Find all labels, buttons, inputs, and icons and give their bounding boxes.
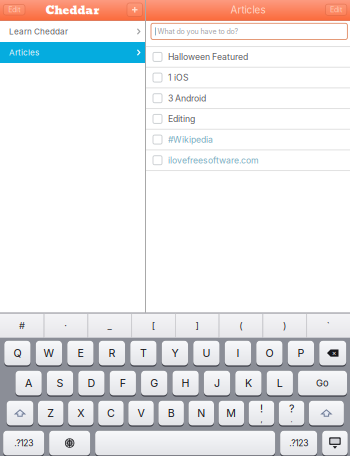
button[interactable]: 1 iOS: [146, 68, 350, 88]
staticText: _: [107, 320, 111, 331]
staticText: V: [137, 407, 144, 419]
staticText: Y: [171, 347, 178, 359]
button[interactable]: J: [204, 371, 230, 397]
button[interactable]: N: [188, 401, 214, 427]
button[interactable]: ]: [175, 314, 219, 338]
button[interactable]: #: [0, 314, 44, 338]
button[interactable]: W: [36, 341, 62, 367]
staticText: What do you have to do?: [157, 27, 238, 36]
staticText: (: [239, 320, 242, 331]
staticText: W: [43, 347, 54, 359]
staticText: 1 iOS: [168, 72, 189, 83]
button[interactable]: Go: [298, 371, 347, 397]
button[interactable]: A: [15, 371, 42, 397]
staticText: G: [150, 377, 158, 389]
button[interactable]: `: [306, 314, 350, 338]
button[interactable]: Articles: [0, 42, 145, 63]
staticText: N: [197, 407, 205, 419]
staticText: ·: [64, 320, 67, 331]
staticText: R: [108, 347, 115, 359]
staticText: I: [236, 347, 239, 359]
staticText: L: [277, 377, 283, 389]
staticText: !: [260, 402, 263, 415]
staticText: ?: [289, 402, 294, 415]
button[interactable]: H: [172, 371, 199, 397]
staticText: X: [77, 407, 84, 419]
button[interactable]: [7, 401, 33, 427]
button[interactable]: C: [98, 401, 124, 427]
button[interactable]: .?123: [280, 431, 317, 456]
staticText: ]: [195, 320, 198, 331]
button[interactable]: K: [235, 371, 261, 397]
staticText: F: [120, 377, 126, 389]
staticText: Halloween Featured: [168, 52, 248, 62]
button[interactable]: ×: [319, 341, 346, 367]
button[interactable]: S: [47, 371, 73, 397]
staticText: Articles: [230, 4, 265, 16]
button[interactable]: L: [267, 371, 293, 397]
staticText: B: [168, 407, 175, 419]
staticText: T: [140, 347, 147, 359]
button[interactable]: Add list: [127, 3, 142, 16]
staticText: U: [202, 347, 210, 359]
button[interactable]: F: [110, 371, 136, 397]
button[interactable]: X: [68, 401, 94, 427]
staticText: .?123: [14, 438, 33, 448]
staticText: S: [56, 377, 63, 389]
button[interactable]: B: [158, 401, 184, 427]
button[interactable]: [95, 431, 275, 456]
staticText: ,: [260, 415, 262, 424]
button[interactable]: Q: [4, 341, 30, 367]
staticText: C: [107, 407, 115, 419]
staticText: Articles: [9, 48, 39, 57]
staticText: .?123: [289, 438, 308, 448]
staticText: Learn Cheddar: [9, 27, 68, 36]
button[interactable]: Halloween Featured: [146, 47, 350, 68]
button[interactable]: M: [219, 401, 244, 427]
button[interactable]: O: [256, 341, 282, 367]
button[interactable]: (: [219, 314, 263, 338]
staticText: ilovefreesoftware.com: [168, 155, 259, 165]
staticText: H: [182, 377, 190, 389]
staticText: Edit: [8, 5, 20, 14]
button[interactable]: ?: [279, 401, 304, 427]
staticText: Q: [13, 347, 21, 359]
button[interactable]: _: [87, 314, 131, 338]
button[interactable]: [: [131, 314, 175, 338]
staticText: Z: [47, 407, 54, 419]
button[interactable]: P: [288, 341, 314, 367]
staticText: M: [226, 407, 236, 419]
staticText: Cheddar: [45, 1, 99, 19]
button[interactable]: [49, 431, 90, 456]
button[interactable]: R: [99, 341, 125, 367]
staticText: `: [327, 320, 330, 331]
button[interactable]: #Wikipedia: [146, 130, 350, 150]
button[interactable]: .?123: [3, 431, 44, 456]
staticText: ×: [332, 349, 337, 357]
staticText: 3 Android: [168, 93, 206, 103]
button[interactable]: Y: [162, 341, 188, 367]
button[interactable]: ilovefreesoftware.com: [146, 150, 350, 171]
button[interactable]: U: [193, 341, 219, 367]
button[interactable]: I: [225, 341, 251, 367]
button[interactable]: E: [67, 341, 93, 367]
button[interactable]: [322, 431, 348, 456]
button[interactable]: 3 Android: [146, 88, 350, 109]
button[interactable]: G: [141, 371, 167, 397]
button[interactable]: D: [78, 371, 104, 397]
button[interactable]: Edit: [325, 4, 347, 15]
staticText: J: [214, 377, 220, 389]
button[interactable]: Z: [38, 401, 63, 427]
button[interactable]: Learn Cheddar: [0, 21, 145, 42]
staticText: #Wikipedia: [168, 134, 213, 145]
button[interactable]: T: [130, 341, 156, 367]
button[interactable]: ): [262, 314, 306, 338]
button[interactable]: V: [128, 401, 154, 427]
button[interactable]: [309, 401, 344, 427]
staticText: Edit: [330, 5, 342, 14]
button[interactable]: Editing: [146, 109, 350, 130]
staticText: O: [265, 347, 273, 359]
button[interactable]: ·: [44, 314, 88, 338]
button[interactable]: !: [249, 401, 274, 427]
button[interactable]: Edit: [3, 4, 25, 15]
